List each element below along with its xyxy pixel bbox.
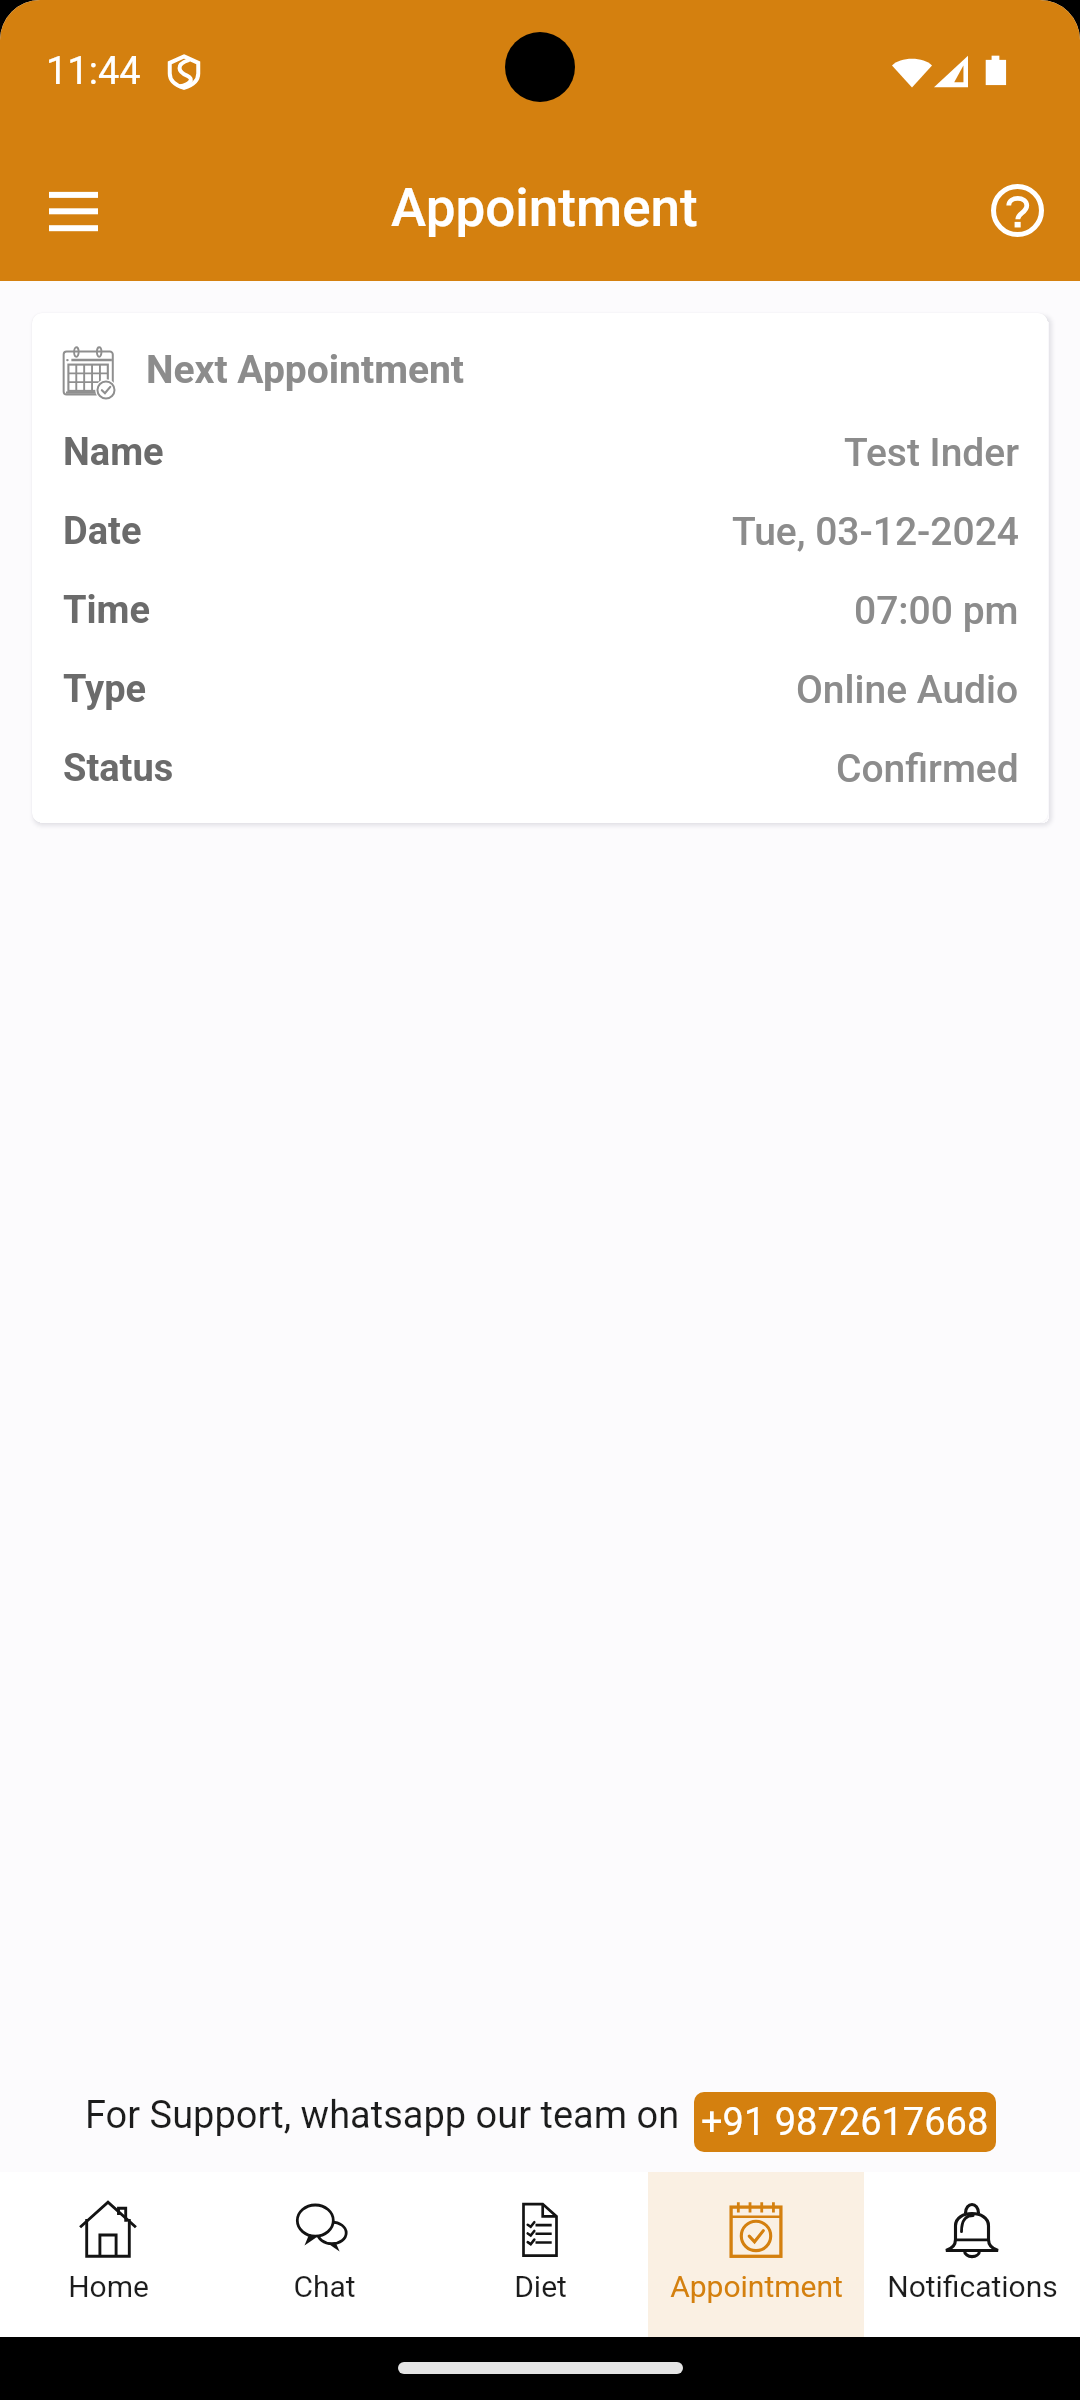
- staticText: +91 9872617668: [701, 2100, 989, 2145]
- staticText: Type: [63, 667, 147, 712]
- button[interactable]: Home: [0, 2172, 216, 2337]
- button[interactable]: +91 9872617668: [694, 2092, 996, 2152]
- staticText: Tue, 03-12-2024: [732, 509, 1019, 555]
- staticText: 11:44: [46, 49, 141, 94]
- staticText: Appointment: [670, 2269, 843, 2304]
- staticText: Online Audio: [796, 667, 1019, 713]
- staticText: Appointment: [391, 177, 698, 239]
- staticText: Notifications: [887, 2269, 1058, 2304]
- staticText: Next Appointment: [146, 347, 465, 393]
- button[interactable]: Appointment: [648, 2172, 864, 2337]
- button[interactable]: Chat: [216, 2172, 432, 2337]
- button[interactable]: Help: [971, 162, 1063, 254]
- staticText: 07:00 pm: [854, 588, 1019, 634]
- button[interactable]: Open navigation menu: [27, 162, 119, 254]
- button[interactable]: Notifications: [864, 2172, 1080, 2337]
- staticText: Home: [68, 2269, 149, 2304]
- staticText: Time: [63, 588, 151, 633]
- staticText: Diet: [514, 2269, 567, 2304]
- staticText: Chat: [293, 2269, 356, 2304]
- staticText: Confirmed: [836, 746, 1019, 792]
- staticText: Status: [63, 746, 174, 791]
- button[interactable]: Diet: [432, 2172, 648, 2337]
- staticText: For Support, whatsapp our team on: [85, 2093, 680, 2138]
- staticText: Name: [63, 430, 164, 475]
- staticText: Test Inder: [844, 430, 1019, 476]
- staticText: Date: [63, 509, 142, 554]
